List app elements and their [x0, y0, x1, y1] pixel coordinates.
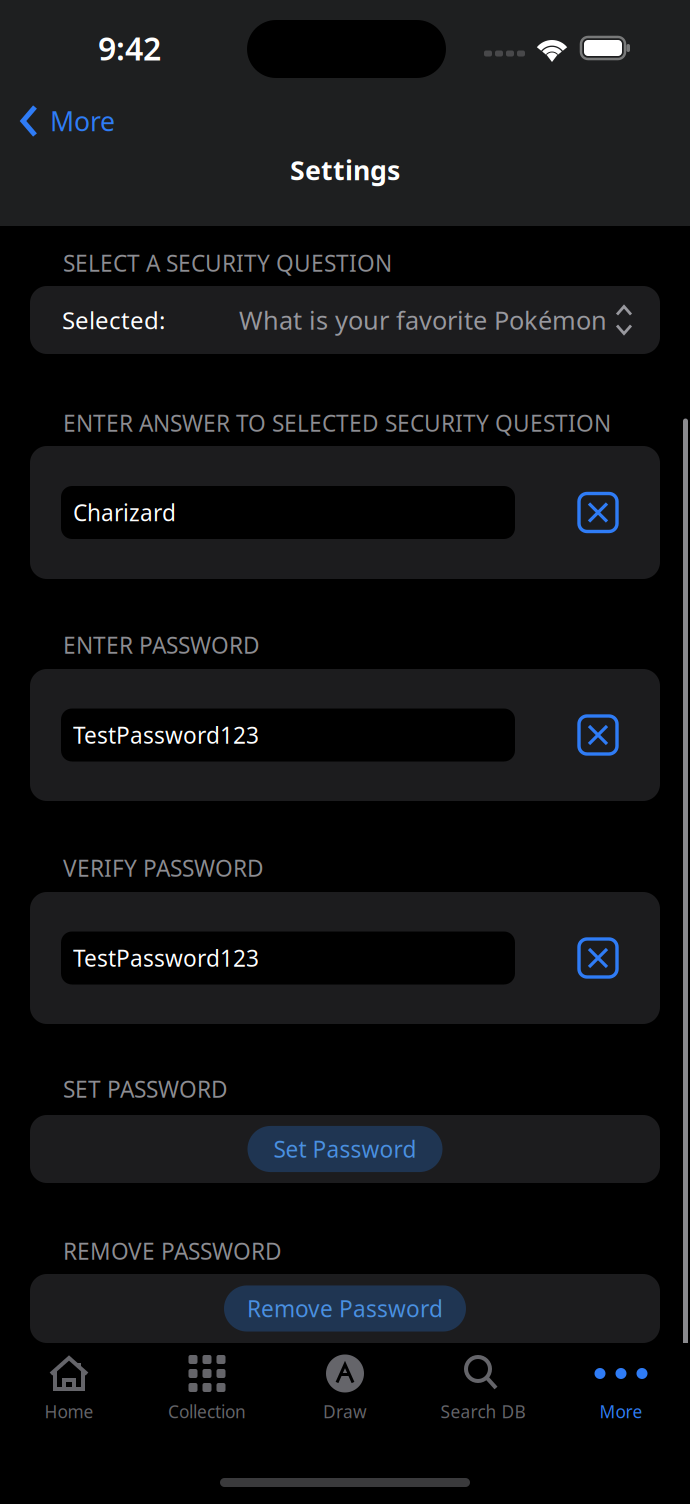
- staticText: Draw: [323, 1400, 367, 1423]
- staticText: What is your favorite Pokémon: [239, 303, 607, 337]
- button[interactable]: Collection: [138, 1343, 276, 1435]
- button[interactable]: Clear: [569, 706, 627, 764]
- button[interactable]: Home: [0, 1343, 138, 1435]
- staticText: Collection: [168, 1400, 246, 1423]
- staticText: More: [599, 1400, 642, 1423]
- staticText: Set Password: [273, 1134, 416, 1164]
- staticText: Charizard: [73, 497, 176, 527]
- staticText: Home: [44, 1400, 93, 1423]
- staticText: SET PASSWORD: [63, 1074, 228, 1104]
- button[interactable]: Clear: [569, 483, 627, 541]
- button[interactable]: Selected:: [30, 286, 660, 354]
- staticText: Selected:: [62, 304, 165, 336]
- staticText: More: [50, 103, 115, 139]
- button[interactable]: Set Password: [247, 1126, 442, 1172]
- staticText: TestPassword123: [73, 720, 259, 750]
- staticText: Settings: [290, 152, 400, 188]
- staticText: REMOVE PASSWORD: [63, 1236, 282, 1266]
- button[interactable]: Draw: [276, 1343, 414, 1435]
- button[interactable]: Search DB: [414, 1343, 552, 1435]
- button[interactable]: More: [552, 1343, 690, 1435]
- staticText: 9:42: [98, 27, 161, 69]
- button[interactable]: More: [0, 96, 131, 146]
- button[interactable]: Clear: [569, 929, 627, 987]
- staticText: SELECT A SECURITY QUESTION: [63, 248, 392, 278]
- staticText: ENTER ANSWER TO SELECTED SECURITY QUESTI…: [63, 408, 611, 438]
- staticText: ENTER PASSWORD: [63, 630, 260, 660]
- staticText: TestPassword123: [73, 943, 259, 973]
- staticText: VERIFY PASSWORD: [63, 853, 264, 883]
- staticText: Remove Password: [247, 1293, 443, 1323]
- button[interactable]: Remove Password: [224, 1285, 466, 1331]
- staticText: Search DB: [440, 1400, 525, 1423]
